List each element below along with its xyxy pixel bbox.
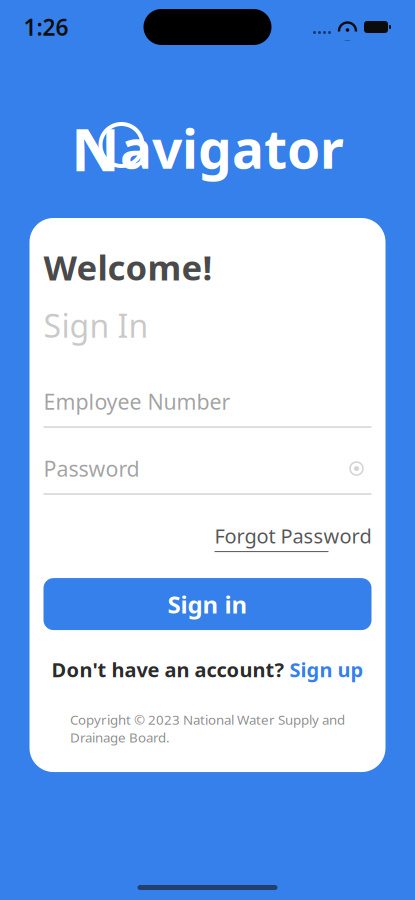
staticText: Copyright © 2023 National Water Supply a… — [70, 711, 345, 746]
button[interactable]: Sign up — [289, 656, 363, 683]
staticText: Employee Number — [43, 387, 230, 416]
staticText: Sign up — [289, 656, 363, 683]
staticText: avigator — [120, 113, 344, 183]
staticText: Welcome! — [43, 244, 212, 290]
staticText: Sign In — [43, 304, 148, 346]
staticText: Forgot Password — [214, 522, 371, 549]
button[interactable]: Forgot Password — [214, 518, 371, 556]
button[interactable]: Show password — [341, 456, 371, 480]
staticText: Password — [43, 454, 139, 483]
staticText: Don't have an account? — [51, 656, 289, 683]
staticText: 1:26 — [23, 12, 68, 42]
staticText: Sign in — [167, 588, 247, 620]
staticText: N — [71, 108, 120, 188]
button[interactable]: Sign in — [43, 578, 371, 630]
